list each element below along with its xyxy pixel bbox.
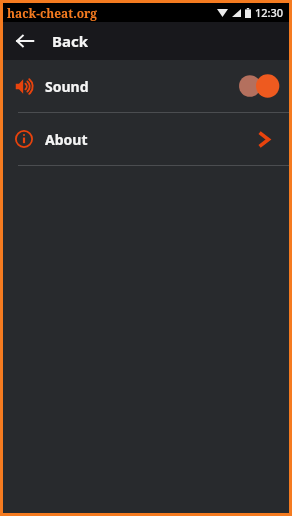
staticText: Back xyxy=(52,31,89,51)
button[interactable]: About xyxy=(3,113,289,165)
staticText: 12:30 xyxy=(255,5,284,20)
staticText: hack-cheat.org xyxy=(7,5,98,21)
staticText: Sound xyxy=(45,77,89,96)
button[interactable]: Sound toggle, on xyxy=(235,71,279,101)
button[interactable]: Sound xyxy=(3,60,289,112)
button[interactable]: Back xyxy=(10,26,40,56)
staticText: About xyxy=(45,130,88,149)
